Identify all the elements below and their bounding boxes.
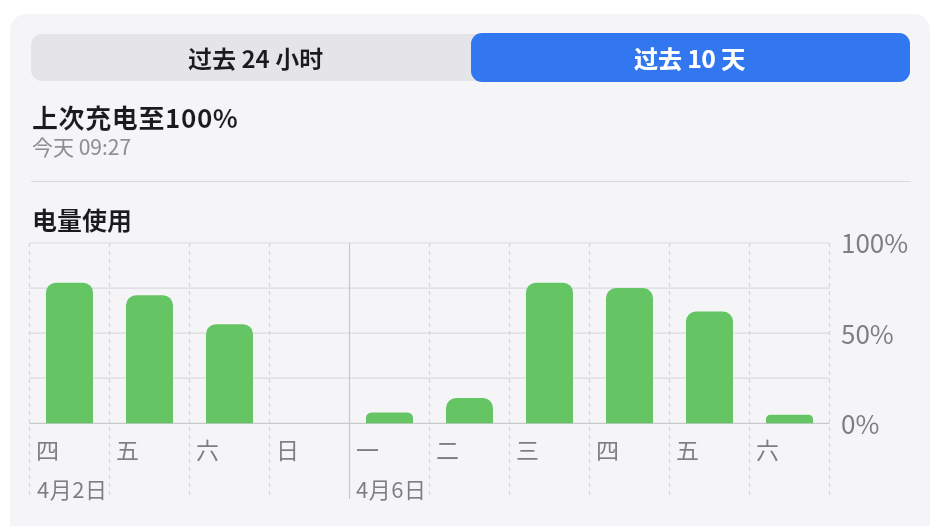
staticText: 四 xyxy=(36,432,59,465)
staticText: 五 xyxy=(676,432,699,465)
staticText: 六 xyxy=(756,432,779,465)
staticText: 五 xyxy=(116,432,139,465)
staticText: 六 xyxy=(196,432,219,465)
staticText: 过去 10 天 xyxy=(634,40,746,75)
staticText: 一 xyxy=(356,432,379,465)
staticText: 二 xyxy=(436,432,459,465)
staticText: 过去 24 小时 xyxy=(188,40,324,75)
staticText: 4月6日 xyxy=(356,472,427,504)
staticText: 四 xyxy=(596,432,619,465)
staticText: 上次充电至100% xyxy=(32,98,239,136)
button[interactable] xyxy=(31,34,910,81)
staticText: 电量使用 xyxy=(32,201,133,237)
staticText: 三 xyxy=(516,432,539,465)
staticText: 100% xyxy=(841,223,909,261)
staticText: 0% xyxy=(841,404,880,442)
staticText: 50% xyxy=(841,314,894,352)
button[interactable] xyxy=(471,33,910,82)
staticText: 今天 09:27 xyxy=(32,131,132,161)
staticText: 日 xyxy=(276,432,299,465)
staticText: 4月2日 xyxy=(37,472,108,504)
